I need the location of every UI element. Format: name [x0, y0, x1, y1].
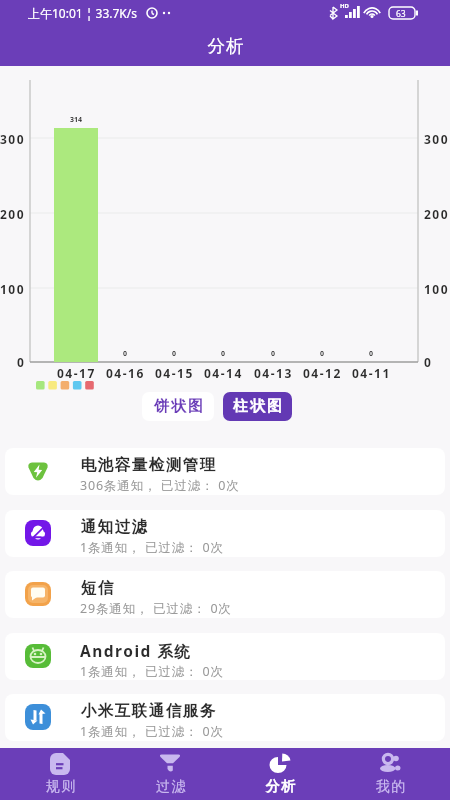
staticText: 电池容量检测管理 — [80, 455, 216, 475]
staticText: 04-15 — [155, 365, 194, 379]
staticText: 我的 — [375, 778, 406, 796]
staticText: 0 — [17, 354, 26, 368]
staticText: 306条通知， 已过滤： 0次 — [80, 477, 240, 494]
staticText: 短信 — [80, 578, 114, 598]
staticText: 04-11 — [352, 365, 391, 379]
staticText: 300 — [0, 131, 26, 145]
button[interactable]: 分析 — [225, 748, 335, 800]
staticText: 04-17 — [57, 365, 96, 379]
staticText: 0 — [221, 349, 226, 359]
button[interactable]: 饼状图 — [142, 392, 214, 421]
button[interactable]: 短信 — [5, 571, 445, 618]
staticText: 饼状图 — [153, 397, 204, 416]
staticText: 04-14 — [204, 365, 243, 379]
staticText: Android 系统 — [80, 640, 192, 661]
button[interactable]: 规则 — [5, 748, 115, 800]
staticText: 0 — [172, 349, 177, 359]
staticText: HD — [340, 2, 349, 10]
staticText: 04-13 — [254, 365, 293, 379]
staticText: 过滤 — [155, 778, 186, 796]
staticText: 63 — [396, 8, 406, 20]
staticText: 0 — [320, 349, 325, 359]
staticText: 上午10:01 ¦ 33.7K/s — [28, 5, 137, 21]
staticText: 200 — [424, 206, 450, 220]
staticText: 分析 — [207, 35, 244, 57]
staticText: 柱状图 — [232, 397, 283, 416]
staticText: 通知过滤 — [80, 517, 148, 537]
staticText: 0 — [123, 349, 128, 359]
staticText: 1条通知， 已过滤： 0次 — [80, 539, 224, 556]
staticText: 100 — [424, 281, 450, 295]
staticText: 1条通知， 已过滤： 0次 — [80, 723, 224, 740]
staticText: 314 — [70, 115, 83, 125]
button[interactable]: 通知过滤 — [5, 510, 445, 557]
staticText: 0 — [271, 349, 276, 359]
staticText: 0 — [369, 349, 374, 359]
staticText: 04-12 — [303, 365, 342, 379]
button[interactable]: 我的 — [335, 748, 445, 800]
staticText: 200 — [0, 206, 26, 220]
staticText: 29条通知， 已过滤： 0次 — [80, 600, 232, 617]
button[interactable]: 过滤 — [115, 748, 225, 800]
staticText: 分析 — [265, 778, 296, 796]
staticText: 04-16 — [106, 365, 145, 379]
button[interactable]: 柱状图 — [223, 392, 292, 421]
staticText: 规则 — [45, 778, 76, 796]
staticText: 小米互联通信服务 — [80, 701, 216, 721]
button[interactable]: Android 系统 — [5, 633, 445, 680]
button[interactable]: 电池容量检测管理 — [5, 448, 445, 495]
button[interactable]: 小米互联通信服务 — [5, 694, 445, 741]
staticText: 100 — [0, 281, 26, 295]
staticText: 1条通知， 已过滤： 0次 — [80, 663, 224, 680]
staticText: 0 — [424, 354, 433, 368]
staticText: 300 — [424, 131, 450, 145]
